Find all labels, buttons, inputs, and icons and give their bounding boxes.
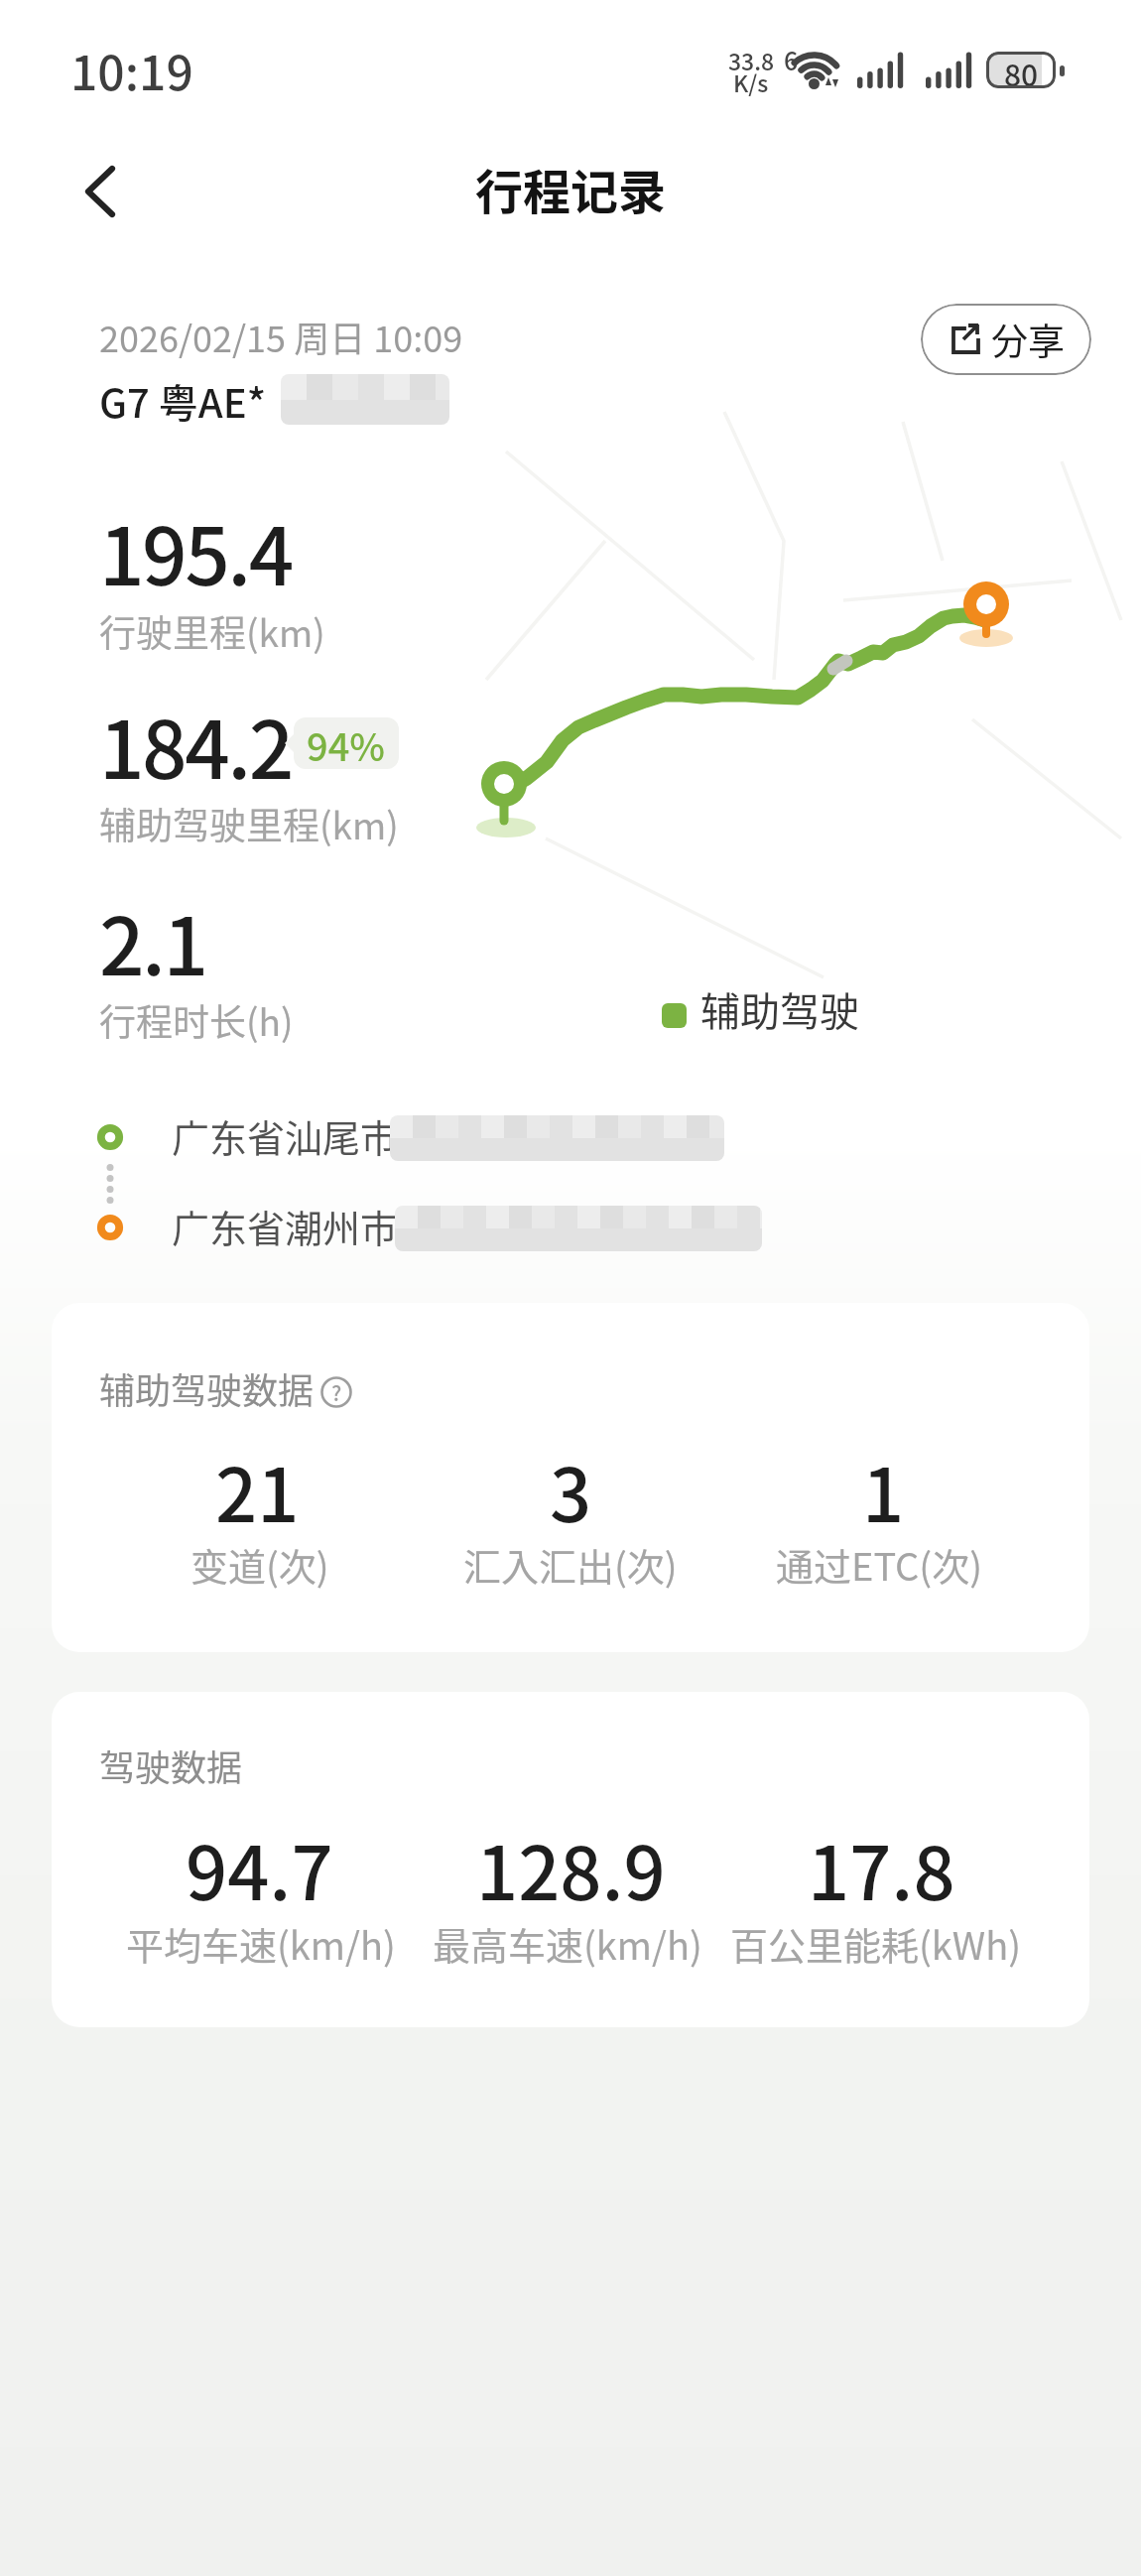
staticText: 行程记录: [475, 154, 667, 223]
staticText: 94.7: [186, 1815, 333, 1921]
staticText: 33.8: [728, 44, 775, 76]
staticText: 184.2: [99, 687, 292, 802]
staticText: G7 粤AE*: [99, 372, 267, 430]
staticText: 辅助驾驶数据: [99, 1362, 315, 1414]
staticText: 广东省潮州市: [172, 1199, 399, 1253]
staticText: K/s: [733, 65, 769, 98]
button[interactable]: [67, 159, 137, 224]
staticText: 广东省汕尾市: [172, 1108, 399, 1163]
staticText: 80: [1004, 52, 1039, 88]
staticText: 21: [215, 1437, 300, 1543]
button[interactable]: 分享: [921, 304, 1091, 375]
staticText: 2.1: [99, 883, 206, 998]
staticText: 行程时长(h): [99, 993, 294, 1047]
staticText: 驾驶数据: [99, 1739, 243, 1791]
staticText: 94%: [307, 717, 386, 769]
staticText: 百公里能耗(kWh): [730, 1916, 1022, 1971]
staticText: 195.4: [99, 493, 292, 608]
staticText: 6: [784, 42, 799, 77]
staticText: 分享: [991, 313, 1065, 366]
staticText: 平均车速(km/h): [126, 1916, 396, 1971]
staticText: 变道(次): [190, 1537, 329, 1592]
staticText: 汇入汇出(次): [463, 1537, 678, 1592]
button[interactable]: ?: [315, 1370, 358, 1414]
staticText: 2026/02/15 周日 10:09: [99, 311, 463, 362]
staticText: 3: [550, 1437, 592, 1543]
staticText: 10:19: [70, 35, 193, 104]
staticText: 最高车速(km/h): [433, 1916, 702, 1971]
staticText: 1: [862, 1437, 905, 1543]
staticText: 17.8: [808, 1815, 955, 1921]
staticText: 行驶里程(km): [99, 604, 325, 658]
staticText: 辅助驾驶: [700, 980, 859, 1038]
staticText: 通过ETC(次): [776, 1537, 983, 1592]
staticText: ?: [331, 1377, 342, 1407]
staticText: 128.9: [476, 1815, 666, 1921]
staticText: 辅助驾驶里程(km): [99, 797, 399, 850]
